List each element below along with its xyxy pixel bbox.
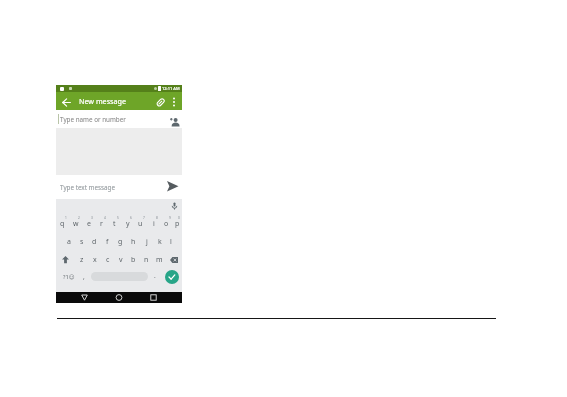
staticText: 1 — [65, 216, 67, 220]
staticText: k — [158, 237, 162, 247]
staticText: i — [153, 219, 155, 229]
staticText: s — [80, 237, 84, 247]
staticText: 0 — [178, 216, 180, 220]
staticText: o — [164, 219, 169, 229]
staticText: 8 — [156, 216, 158, 220]
staticText: m — [156, 255, 163, 265]
staticText: 3 — [91, 216, 93, 220]
staticText: x — [93, 255, 97, 265]
staticText: t — [113, 219, 116, 229]
staticText: 9 — [169, 216, 171, 220]
staticText: 7 — [143, 216, 145, 220]
staticText: w — [73, 219, 79, 229]
staticText: r — [100, 219, 103, 229]
staticText: p — [175, 219, 180, 229]
staticText: g — [118, 237, 123, 247]
staticText: , — [83, 272, 85, 281]
staticText: 5 — [117, 216, 119, 220]
staticText: n — [144, 255, 149, 265]
staticText: j — [146, 237, 148, 247]
staticText: a — [67, 237, 71, 247]
staticText: q — [60, 219, 65, 229]
staticText: ?1☺ — [63, 273, 75, 281]
staticText: y — [126, 219, 130, 229]
staticText: b — [131, 255, 136, 265]
staticText: 6 — [130, 216, 132, 220]
staticText: v — [119, 255, 123, 265]
staticText: z — [80, 255, 84, 265]
staticText: e — [87, 219, 91, 229]
staticText: d — [92, 237, 97, 247]
staticText: f — [106, 237, 109, 247]
staticText: 12:11 AM — [162, 86, 180, 91]
staticText: u — [138, 219, 143, 229]
staticText: Type name or number — [60, 115, 126, 124]
staticText: . — [154, 271, 156, 280]
staticText: l — [170, 237, 172, 247]
staticText: c — [106, 255, 110, 265]
staticText: New message — [79, 96, 127, 106]
staticText: 4 — [104, 216, 106, 220]
staticText: h — [131, 237, 136, 247]
staticText: Type text message — [60, 183, 116, 192]
staticText: 2 — [78, 216, 80, 220]
